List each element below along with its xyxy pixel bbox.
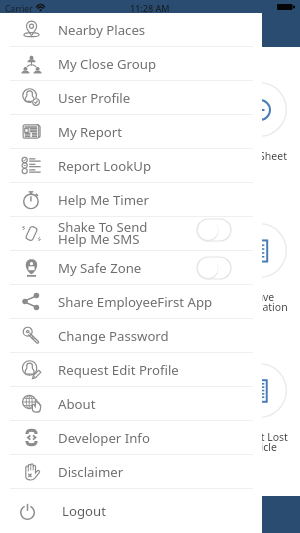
button[interactable]: About xyxy=(0,387,262,420)
button[interactable]: Share EmployeeFirst App xyxy=(0,285,262,318)
staticText: Time Sheet xyxy=(232,149,287,163)
button[interactable]: My Report xyxy=(0,115,262,148)
button[interactable]: Disclaimer xyxy=(0,455,262,488)
staticText: Leave Application xyxy=(232,290,288,314)
staticText: Disclaimer xyxy=(58,463,124,481)
button[interactable]: Report LookUp xyxy=(0,149,262,182)
staticText: Logout xyxy=(62,502,106,520)
button[interactable]: My Safe Zone xyxy=(0,251,262,284)
button[interactable]: Nearby Places xyxy=(0,13,262,46)
staticText: 11:28 AM xyxy=(130,2,170,14)
staticText: Report Lost Vehicle xyxy=(231,430,288,454)
button[interactable]: Logout xyxy=(0,489,262,533)
button[interactable]: Leave Application xyxy=(232,223,287,278)
button[interactable]: Help Me Timer xyxy=(0,183,262,216)
staticText: Help Me Timer xyxy=(58,191,149,209)
staticText: About xyxy=(58,395,96,413)
button[interactable]: User Profile xyxy=(0,81,262,114)
staticText: Request Edit Profile xyxy=(58,361,179,379)
staticText: Nearby Places xyxy=(58,21,146,39)
staticText: Shake To Send Help Me SMS xyxy=(58,218,148,248)
staticText: Report LookUp xyxy=(58,157,152,175)
staticText: My Close Group xyxy=(58,55,157,73)
button[interactable]: Change Password xyxy=(0,319,262,352)
button[interactable]: Shake To Send Help Me SMS xyxy=(0,217,262,250)
staticText: My Report xyxy=(58,123,123,141)
staticText: Developer Info xyxy=(58,429,150,447)
staticText: My Safe Zone xyxy=(58,259,142,277)
button[interactable]: My Close Group xyxy=(0,47,262,80)
button[interactable]: Toggle xyxy=(197,257,231,279)
staticText: User Profile xyxy=(58,89,131,107)
button[interactable]: Toggle xyxy=(197,219,231,241)
staticText: Share EmployeeFirst App xyxy=(58,293,213,311)
staticText: Change Password xyxy=(58,327,169,345)
staticText: Carrier xyxy=(5,3,33,15)
button[interactable]: Request Edit Profile xyxy=(0,353,262,386)
button[interactable]: Report Lost Vehicle xyxy=(232,363,287,418)
button[interactable]: Developer Info xyxy=(0,421,262,454)
button[interactable]: Time Sheet xyxy=(232,82,287,137)
